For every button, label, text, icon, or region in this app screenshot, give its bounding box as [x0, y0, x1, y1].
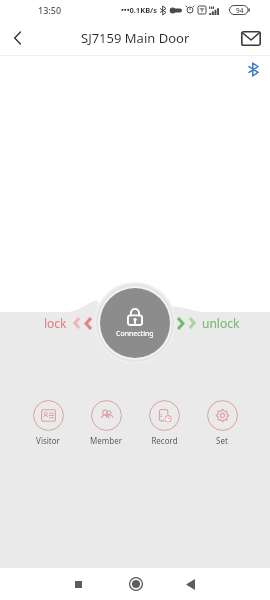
staticText: 94 — [236, 6, 244, 15]
button[interactable]: Set — [193, 400, 251, 446]
staticText: Set — [216, 435, 228, 446]
button[interactable]: Recents — [62, 568, 95, 600]
staticText: Connecting — [116, 329, 154, 339]
staticText: unlock — [202, 315, 240, 331]
button[interactable]: Home — [119, 568, 152, 600]
button[interactable]: Member — [77, 400, 135, 446]
staticText: Record — [151, 435, 178, 446]
staticText: 13:50 — [38, 4, 62, 16]
staticText: lock — [44, 315, 67, 331]
button[interactable]: Back — [174, 568, 207, 600]
button[interactable]: Record — [135, 400, 193, 446]
button[interactable]: Back — [4, 25, 30, 51]
button[interactable]: Visitor — [19, 400, 77, 446]
button[interactable]: unlock — [177, 315, 240, 331]
button[interactable]: Bluetooth connected — [245, 61, 261, 77]
staticText: SJ7159 Main Door — [81, 29, 190, 47]
staticText: •••0.1KB/s — [121, 5, 157, 15]
button[interactable]: lock — [44, 315, 92, 331]
button[interactable]: Lock toggle, connecting — [94, 282, 176, 364]
staticText: Member — [90, 435, 122, 446]
button[interactable]: Messages — [237, 24, 265, 52]
staticText: Visitor — [36, 435, 60, 446]
